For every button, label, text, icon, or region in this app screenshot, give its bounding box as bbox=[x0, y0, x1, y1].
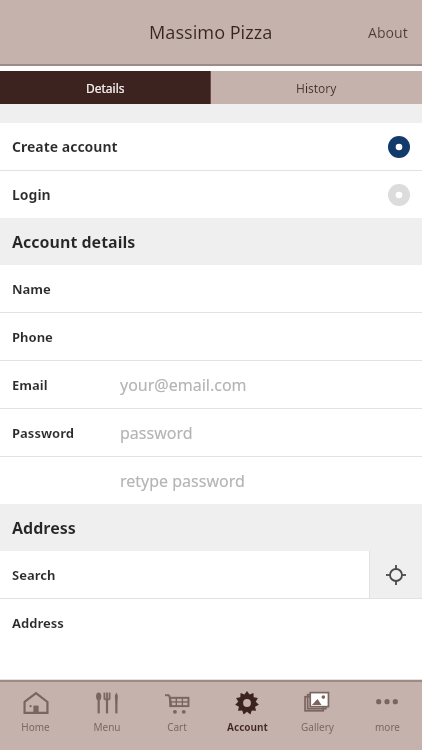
button[interactable]: Address bbox=[0, 599, 422, 646]
staticText: your@email.com bbox=[120, 374, 247, 396]
button[interactable]: Search bbox=[0, 551, 422, 598]
button[interactable]: Menu bbox=[71, 682, 142, 750]
staticText: Search bbox=[12, 566, 56, 584]
button[interactable]: Phone bbox=[0, 313, 422, 360]
button[interactable]: About bbox=[354, 13, 422, 52]
staticText: Address bbox=[12, 614, 64, 632]
staticText: Details bbox=[86, 80, 125, 96]
staticText: Account details bbox=[12, 231, 136, 253]
staticText: Email bbox=[12, 376, 48, 394]
staticText: Login bbox=[12, 185, 388, 204]
staticText: History bbox=[296, 80, 337, 96]
button[interactable]: Gallery bbox=[282, 682, 352, 750]
staticText: Address bbox=[12, 517, 76, 539]
staticText: Cart bbox=[167, 720, 187, 734]
button[interactable]: Home bbox=[0, 682, 71, 750]
staticText: password bbox=[120, 422, 193, 444]
button[interactable]: more bbox=[352, 682, 422, 750]
staticText: retype password bbox=[120, 470, 245, 492]
staticText: Account bbox=[227, 720, 268, 734]
staticText: Menu bbox=[93, 720, 121, 734]
staticText: Create account bbox=[12, 137, 388, 156]
button[interactable]: Create account bbox=[0, 123, 422, 170]
staticText: Massimo Pizza bbox=[149, 20, 273, 45]
staticText: Name bbox=[12, 280, 51, 298]
button[interactable]: Password bbox=[0, 409, 422, 456]
button[interactable]: retype password bbox=[0, 457, 422, 504]
staticText: Home bbox=[21, 720, 50, 734]
staticText: Phone bbox=[12, 328, 53, 346]
button[interactable]: Cart bbox=[142, 682, 212, 750]
staticText: Gallery bbox=[301, 720, 334, 734]
button[interactable]: History bbox=[211, 71, 422, 104]
button[interactable]: Details bbox=[0, 71, 210, 104]
button[interactable]: Login bbox=[0, 171, 422, 218]
button[interactable]: Account bbox=[212, 682, 282, 750]
staticText: Password bbox=[12, 424, 74, 442]
staticText: About bbox=[368, 23, 408, 42]
staticText: more bbox=[375, 720, 400, 734]
button[interactable]: Name bbox=[0, 265, 422, 312]
button[interactable]: Email bbox=[0, 361, 422, 408]
button[interactable]: Use current location bbox=[370, 551, 422, 598]
